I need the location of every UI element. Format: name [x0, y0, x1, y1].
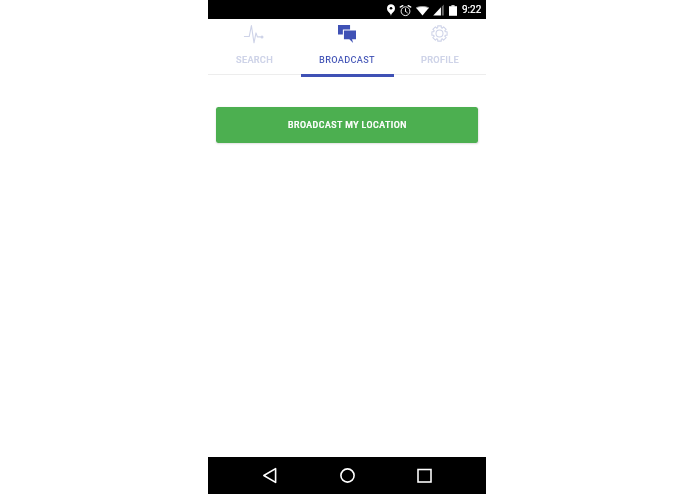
button[interactable]: Home	[329, 457, 365, 494]
button[interactable]: Back	[252, 457, 288, 494]
button[interactable]: Recents	[406, 457, 442, 494]
button[interactable]: SEARCH	[208, 19, 300, 77]
staticText: BROADCAST MY LOCATION	[288, 120, 407, 130]
staticText: 9:22	[462, 4, 482, 16]
staticText: PROFILE	[421, 54, 459, 65]
button[interactable]: BROADCAST	[300, 19, 393, 77]
button[interactable]: PROFILE	[393, 19, 486, 77]
staticText: BROADCAST	[319, 54, 375, 65]
staticText: SEARCH	[236, 54, 273, 65]
button[interactable]: BROADCAST MY LOCATION	[216, 107, 478, 143]
